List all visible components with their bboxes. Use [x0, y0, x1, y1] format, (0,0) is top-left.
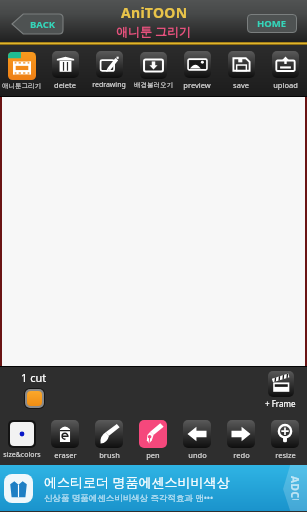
- button[interactable]: 1 cut: [21, 370, 47, 409]
- staticText: + Frame: [265, 398, 296, 409]
- staticText: pen: [146, 450, 160, 460]
- button[interactable]: redo: [219, 415, 263, 465]
- staticText: HOME: [257, 17, 287, 30]
- staticText: ADCUBE: [288, 476, 302, 500]
- staticText: AniTOON: [121, 3, 188, 22]
- button[interactable]: delete: [43, 45, 87, 96]
- staticText: brush: [99, 450, 120, 460]
- staticText: redo: [233, 450, 250, 460]
- button[interactable]: pen: [131, 415, 175, 465]
- staticText: 배경불러오기: [134, 81, 173, 89]
- button[interactable]: BACK: [12, 14, 63, 34]
- staticText: BACK: [30, 18, 56, 31]
- staticText: undo: [188, 450, 207, 460]
- button[interactable]: preview: [175, 45, 219, 96]
- staticText: 애니툰 그리기: [116, 23, 192, 39]
- button[interactable]: brush: [87, 415, 131, 465]
- staticText: 1 cut: [21, 370, 47, 385]
- button[interactable]: 에스티로더 명품에센스비비색상: [0, 465, 307, 511]
- staticText: save: [233, 80, 249, 90]
- button[interactable]: HOME: [247, 14, 297, 33]
- staticText: eraser: [54, 450, 77, 460]
- button[interactable]: redrawing: [87, 45, 131, 96]
- staticText: resize: [275, 450, 296, 460]
- button[interactable]: undo: [175, 415, 219, 465]
- staticText: size&colors: [3, 450, 41, 460]
- button[interactable]: eraser: [43, 415, 87, 465]
- staticText: preview: [183, 80, 211, 90]
- staticText: 에스티로더 명품에센스비비색상: [44, 473, 230, 491]
- button[interactable]: size&colors: [0, 415, 43, 465]
- button[interactable]: 애니툰그리기: [0, 45, 43, 96]
- staticText: upload: [273, 80, 298, 90]
- button[interactable]: 배경불러오기: [131, 45, 175, 96]
- staticText: delete: [54, 80, 76, 90]
- button[interactable]: resize: [263, 415, 307, 465]
- button[interactable]: + Frame: [265, 371, 296, 409]
- staticText: redrawing: [92, 80, 126, 90]
- button[interactable]: upload: [263, 45, 307, 96]
- staticText: 애니툰그리기: [2, 82, 41, 90]
- button[interactable]: save: [219, 45, 263, 96]
- staticText: 신상품 명품에센스비비색상 즉각적효과 맨•••: [44, 492, 214, 504]
